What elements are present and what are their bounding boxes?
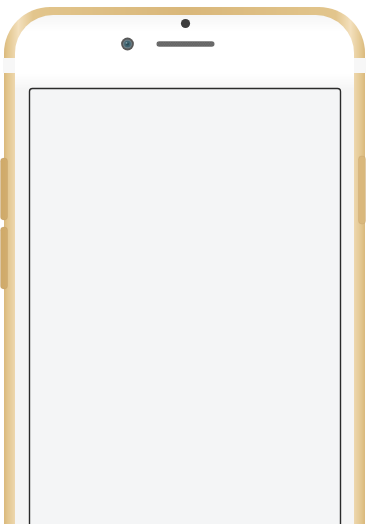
button[interactable]: Gold smartphone device mockup with blank… xyxy=(0,0,369,524)
